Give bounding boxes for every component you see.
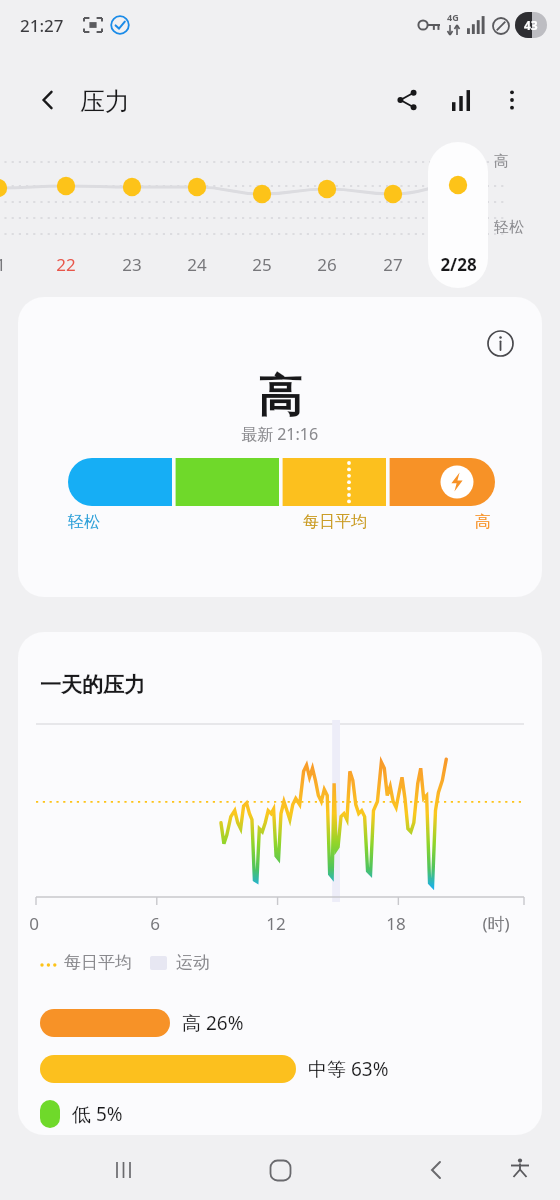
staticText: 21 — [0, 253, 6, 276]
staticText: 高 — [494, 152, 509, 171]
button[interactable]: Home — [256, 1146, 304, 1194]
staticText: 压力 — [80, 86, 130, 117]
staticText: 运动 — [176, 952, 210, 973]
button[interactable]: More options — [490, 78, 534, 122]
staticText: 中等 63% — [308, 1056, 389, 1082]
staticText: 轻松 — [68, 512, 100, 532]
button[interactable]: 25 — [246, 250, 278, 278]
staticText: 25 — [252, 253, 272, 276]
button[interactable]: Back — [412, 1146, 460, 1194]
staticText: 一天的压力 — [40, 672, 145, 698]
staticText: 6 — [150, 912, 160, 935]
button[interactable]: 24 — [181, 250, 213, 278]
button[interactable]: Accessibility — [498, 1146, 542, 1190]
staticText: 24 — [187, 253, 207, 276]
button[interactable]: 一天的压力 — [18, 632, 542, 1135]
staticText: 23 — [122, 253, 142, 276]
staticText: 每日平均 — [303, 512, 367, 532]
button[interactable]: Chart — [440, 78, 484, 122]
button[interactable]: 23 — [116, 250, 148, 278]
button[interactable]: 27 — [377, 250, 409, 278]
staticText: (时) — [482, 912, 510, 935]
staticText: 22 — [56, 253, 76, 276]
staticText: 低 5% — [72, 1101, 123, 1127]
button[interactable]: 2/28 — [428, 248, 488, 280]
button[interactable]: Information — [18, 297, 542, 597]
staticText: 12 — [266, 912, 286, 935]
button[interactable]: 26 — [311, 250, 343, 278]
button[interactable]: 22 — [50, 250, 82, 278]
staticText: 每日平均 — [64, 952, 132, 973]
button[interactable]: 21 — [0, 250, 12, 278]
staticText: 高 26% — [182, 1010, 244, 1036]
staticText: 轻松 — [494, 218, 524, 237]
staticText: 高 — [258, 369, 302, 424]
staticText: 0 — [29, 912, 39, 935]
staticText: 27 — [383, 253, 403, 276]
staticText: 最新 21:16 — [241, 423, 319, 445]
staticText: 2/28 — [440, 253, 477, 276]
staticText: 43 — [524, 17, 538, 33]
staticText: 4G — [447, 11, 459, 23]
button[interactable]: Recents — [100, 1146, 148, 1194]
button[interactable]: Back — [26, 78, 70, 122]
button[interactable]: Share — [385, 78, 429, 122]
button[interactable]: Information — [478, 321, 522, 365]
staticText: 21:27 — [20, 14, 64, 37]
staticText: 18 — [386, 912, 406, 935]
staticText: 高 — [475, 512, 491, 532]
staticText: 26 — [317, 253, 337, 276]
